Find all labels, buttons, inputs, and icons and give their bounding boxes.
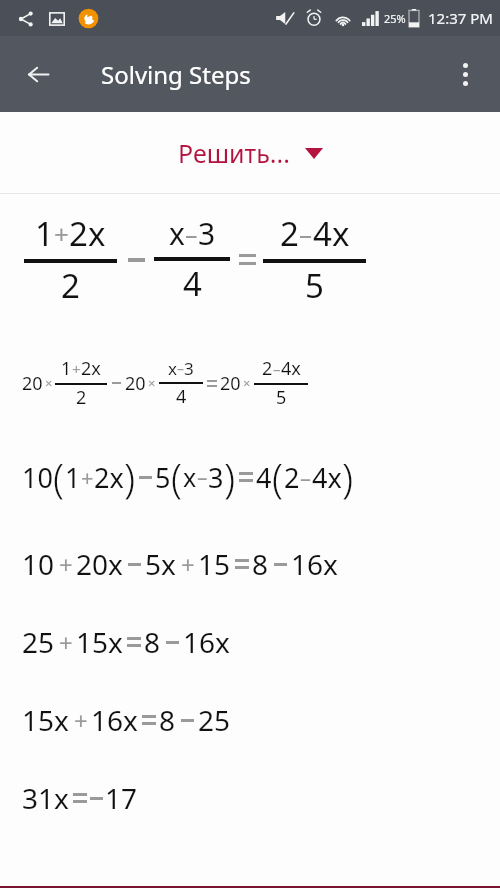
staticText: 20 (22, 371, 43, 396)
staticText: × (243, 374, 251, 392)
staticText: 15x (22, 701, 69, 739)
staticText: ( (171, 450, 183, 504)
staticText: + (81, 462, 94, 492)
staticText: 20x (76, 545, 123, 583)
staticText: Решить... (178, 136, 290, 170)
staticText: 8 (252, 545, 269, 583)
staticText: 16x (91, 701, 138, 739)
staticText: + (74, 704, 88, 737)
staticText: 2 (61, 263, 80, 308)
staticText: 2x (69, 211, 106, 256)
staticText: + (54, 216, 69, 251)
staticText: 2 (262, 356, 273, 381)
staticText: 2 (280, 211, 299, 256)
staticText: 8 (144, 623, 161, 661)
staticText: 25 (22, 623, 55, 661)
staticText: 1 (35, 211, 54, 256)
staticText: 15 (198, 545, 231, 583)
staticText: x (183, 460, 197, 494)
staticText: – (299, 216, 313, 251)
staticText: 20 (125, 371, 146, 396)
staticText: 2 (284, 459, 300, 496)
staticText: 5 (305, 263, 324, 308)
staticText: – (177, 359, 184, 378)
staticText: 4 (176, 384, 187, 409)
button[interactable]: Решить (0, 112, 500, 193)
staticText: Solving Steps (101, 58, 251, 91)
staticText: + (72, 359, 81, 379)
staticText: 4 (256, 459, 272, 496)
staticText: × (45, 374, 53, 392)
staticText: 2x (94, 459, 124, 496)
staticText: 16x (291, 545, 338, 583)
staticText: 4x (313, 211, 350, 256)
staticText: 20 (220, 371, 241, 396)
button[interactable]: More options (441, 50, 489, 98)
staticText: 5x (145, 545, 176, 583)
staticText: x (168, 357, 177, 380)
staticText: 16x (183, 623, 230, 661)
staticText: – (300, 462, 312, 492)
staticText: 31x (22, 779, 69, 817)
staticText: ) (224, 450, 236, 504)
staticText: – (197, 463, 208, 492)
staticText: 25% (384, 11, 406, 26)
staticText: x (169, 213, 185, 254)
staticText: 8 (159, 701, 176, 739)
staticText: + (59, 626, 73, 659)
staticText: ) (124, 450, 136, 504)
staticText: 10 (22, 545, 55, 583)
staticText: 17 (105, 779, 138, 817)
staticText: 2 (76, 385, 87, 410)
staticText: 1 (61, 356, 72, 381)
staticText: 4x (281, 356, 301, 381)
staticText: – (273, 359, 281, 379)
staticText: 5 (276, 385, 287, 410)
staticText: – (185, 217, 198, 251)
staticText: 3 (208, 459, 224, 496)
staticText: + (181, 548, 195, 581)
staticText: 4x (312, 459, 342, 496)
staticText: 1 (65, 459, 81, 496)
staticText: 3 (184, 357, 194, 380)
staticText: 15x (76, 623, 123, 661)
staticText: 12:37 PM (428, 8, 493, 28)
staticText: + (59, 548, 73, 581)
staticText: × (148, 374, 156, 392)
staticText: 5 (155, 459, 171, 496)
staticText: 25 (198, 701, 231, 739)
staticText: 10 (22, 459, 53, 496)
staticText: 4 (183, 261, 202, 306)
staticText: ( (53, 450, 65, 504)
button[interactable]: Back (14, 50, 62, 98)
staticText: ( (272, 450, 284, 504)
staticText: 2x (81, 356, 101, 381)
staticText: 3 (198, 213, 216, 254)
staticText: ) (342, 450, 354, 504)
